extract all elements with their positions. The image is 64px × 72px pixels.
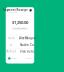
staticText: To <box>9 43 12 47</box>
staticText: $1,250.00 <box>12 20 28 25</box>
staticText: #A12F9 <box>26 57 32 59</box>
staticText: From <box>8 36 14 40</box>
staticText: Payment Completed <box>13 28 26 29</box>
staticText: Visa 4242 <box>20 50 35 53</box>
staticText: Alex Morgan <box>19 36 36 40</box>
staticText: Mar 12, 2024 <box>9 12 18 13</box>
button[interactable]: Close <box>29 9 32 11</box>
staticText: Verified <box>11 57 17 59</box>
staticText: Studio Co. <box>20 43 35 47</box>
staticText: Payment Receipt <box>3 8 28 12</box>
staticText: Method <box>5 50 16 53</box>
